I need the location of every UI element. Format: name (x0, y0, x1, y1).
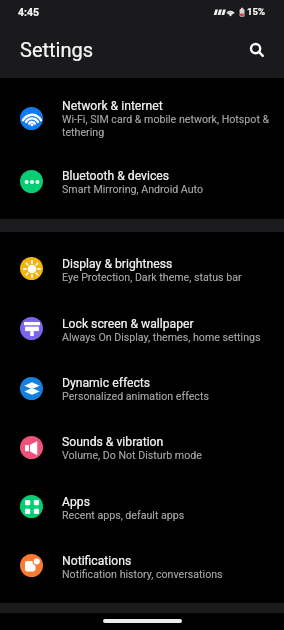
button[interactable]: Notifications (0, 536, 284, 595)
staticText: Sounds & vibration (62, 435, 164, 449)
staticText: Wi-Fi, SIM card & mobile network, Hotspo… (62, 113, 272, 139)
staticText: Bluetooth & devices (62, 169, 170, 183)
staticText: Smart Mirroring, Android Auto (62, 183, 204, 195)
button[interactable]: Apps (0, 477, 284, 536)
staticText: Settings (20, 38, 94, 61)
button[interactable]: Display & brightness (0, 239, 284, 298)
staticText: Network & internet (62, 99, 163, 113)
staticText: 4:45 (18, 6, 40, 18)
staticText: Dynamic effects (62, 376, 151, 390)
staticText: Volume, Do Not Disturb mode (62, 449, 202, 461)
staticText: Apps (62, 495, 90, 509)
staticText: 15% (247, 6, 265, 17)
button[interactable]: Dynamic effects (0, 359, 284, 417)
button[interactable]: Sounds & vibration (0, 417, 284, 477)
staticText: Notifications (62, 554, 132, 568)
staticText: Personalized animation effects (62, 390, 209, 402)
staticText: Notification history, conversations (62, 568, 223, 580)
staticText: Always On Display, themes, home settings (62, 331, 261, 343)
staticText: Eye Protection, Dark theme, status bar (62, 271, 242, 283)
staticText: Recent apps, default apps (62, 509, 185, 521)
staticText: Lock screen & wallpaper (62, 317, 194, 331)
button[interactable]: Search (243, 36, 270, 63)
button[interactable]: Network & internet (0, 83, 284, 153)
button[interactable]: Lock screen & wallpaper (0, 298, 284, 359)
button[interactable]: Bluetooth & devices (0, 153, 284, 209)
staticText: Display & brightness (62, 257, 173, 271)
